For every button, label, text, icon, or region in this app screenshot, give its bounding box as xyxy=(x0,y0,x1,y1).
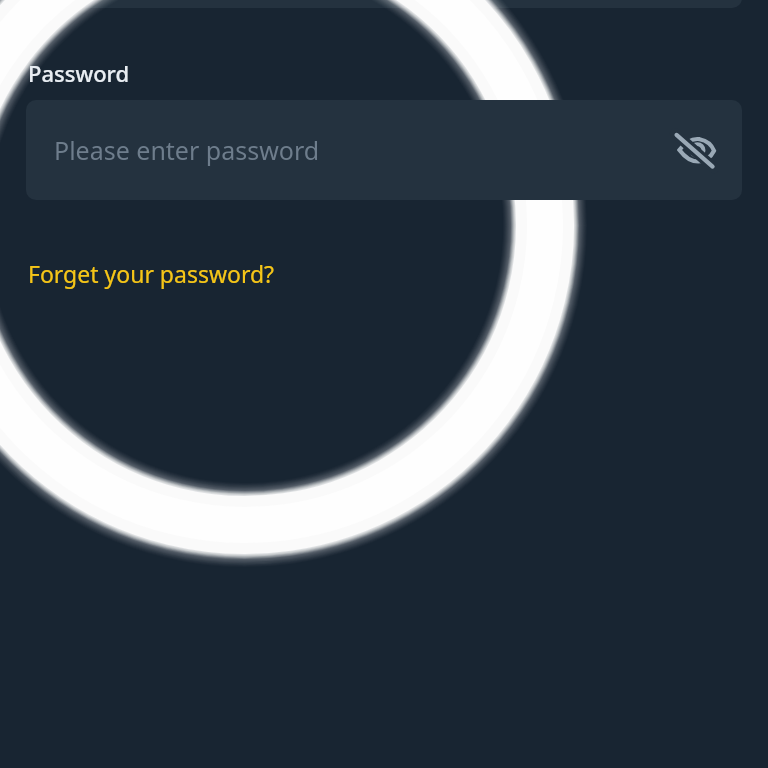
button[interactable]: Please enter password xyxy=(26,100,742,200)
staticText: Password xyxy=(28,58,130,88)
button[interactable]: Show password xyxy=(668,122,724,178)
button[interactable]: Forget your password? xyxy=(20,252,267,283)
staticText: Please enter password xyxy=(54,133,320,167)
button[interactable] xyxy=(26,0,742,8)
staticText: Forget your password? xyxy=(28,258,275,289)
